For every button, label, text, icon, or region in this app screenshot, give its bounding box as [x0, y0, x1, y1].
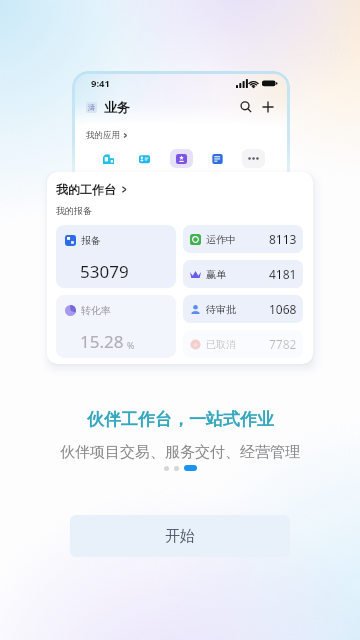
staticText: %	[127, 339, 135, 351]
staticText: 待审批	[206, 303, 236, 316]
button[interactable]: Add	[261, 100, 275, 114]
button[interactable]: 开始	[70, 515, 290, 557]
button[interactable]: Search	[239, 100, 253, 114]
button[interactable]: 赢单	[183, 260, 303, 288]
staticText: 转化率	[81, 304, 111, 317]
button[interactable]: More	[242, 149, 265, 168]
staticText: 8113	[269, 231, 297, 247]
button[interactable]	[170, 149, 193, 168]
staticText: 濤	[88, 103, 95, 112]
staticText: 53079	[80, 260, 129, 283]
staticText: 15.28	[80, 330, 124, 353]
staticText: 我的工作台	[56, 182, 116, 197]
button[interactable]: 运作中	[183, 225, 303, 253]
staticText: 开始	[165, 527, 195, 546]
button[interactable]	[97, 149, 120, 168]
staticText: 业务	[104, 99, 130, 115]
staticText: 伙伴工作台，一站式作业	[87, 409, 274, 430]
button[interactable]	[133, 149, 156, 168]
staticText: 我的报备	[56, 205, 92, 216]
staticText: 1068	[269, 301, 297, 317]
staticText: 已取消	[206, 338, 236, 351]
button[interactable]: 已取消	[183, 330, 303, 358]
button[interactable]: 待审批	[183, 295, 303, 323]
button[interactable]: 转化率	[56, 295, 176, 358]
staticText: 我的应用	[86, 130, 120, 141]
button[interactable]: 我的工作台	[56, 182, 128, 197]
staticText: 伙伴项目交易、服务交付、经营管理	[60, 443, 300, 462]
staticText: 7782	[269, 336, 297, 352]
button[interactable]: 我的应用	[86, 130, 128, 141]
button[interactable]: 报备	[56, 225, 176, 288]
staticText: 9:41	[91, 77, 110, 90]
staticText: 报备	[81, 234, 101, 247]
staticText: 赢单	[206, 268, 226, 281]
staticText: 运作中	[206, 233, 236, 246]
staticText: 4181	[269, 266, 297, 282]
button[interactable]	[206, 149, 229, 168]
